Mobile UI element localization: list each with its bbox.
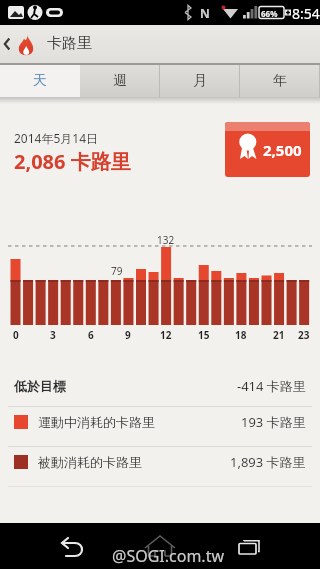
staticText: 9 bbox=[125, 328, 131, 342]
staticText: 79 bbox=[111, 264, 123, 278]
button[interactable]: 被動消耗的卡路里 bbox=[0, 444, 320, 479]
staticText: 運動中消耗的卡路里 bbox=[38, 414, 155, 430]
staticText: 0 bbox=[13, 328, 19, 342]
staticText: 卡路里 bbox=[47, 34, 92, 53]
button[interactable]: 月 bbox=[160, 65, 240, 97]
staticText: 年 bbox=[273, 72, 287, 90]
staticText: 193 卡路里 bbox=[241, 413, 306, 431]
staticText: 8:54 bbox=[292, 4, 320, 23]
button[interactable]: 天 bbox=[0, 65, 80, 97]
button[interactable]: 2,500 bbox=[225, 122, 310, 177]
button[interactable]: 卡路里 bbox=[0, 25, 320, 63]
staticText: 21 bbox=[273, 328, 285, 342]
staticText: 天 bbox=[33, 72, 47, 90]
staticText: -414 卡路里 bbox=[237, 377, 306, 395]
staticText: 被動消耗的卡路里 bbox=[38, 454, 142, 470]
staticText: 2014年5月14日 bbox=[14, 130, 99, 146]
staticText: 低於目標 bbox=[14, 378, 66, 394]
staticText: 2,500 bbox=[263, 140, 302, 160]
staticText: 6 bbox=[88, 328, 94, 342]
staticText: 66% bbox=[261, 8, 278, 19]
staticText: 12 bbox=[160, 328, 172, 342]
button[interactable]: 運動中消耗的卡路里 bbox=[0, 404, 320, 440]
button[interactable]: 低於目標 bbox=[0, 366, 320, 406]
staticText: 23 bbox=[298, 328, 310, 342]
staticText: N bbox=[200, 5, 210, 21]
staticText: 1,893 卡路里 bbox=[230, 453, 306, 471]
button[interactable]: 週 bbox=[80, 65, 160, 97]
staticText: 月 bbox=[193, 72, 207, 90]
staticText: 132 bbox=[157, 233, 175, 247]
staticText: 18 bbox=[235, 328, 247, 342]
staticText: 2,086 卡路里 bbox=[14, 148, 131, 175]
staticText: @SOGI.com.tw bbox=[112, 545, 224, 567]
button[interactable]: 年 bbox=[240, 65, 320, 97]
staticText: 週 bbox=[113, 72, 127, 90]
staticText: 15 bbox=[198, 328, 210, 342]
staticText: 3 bbox=[50, 328, 56, 342]
